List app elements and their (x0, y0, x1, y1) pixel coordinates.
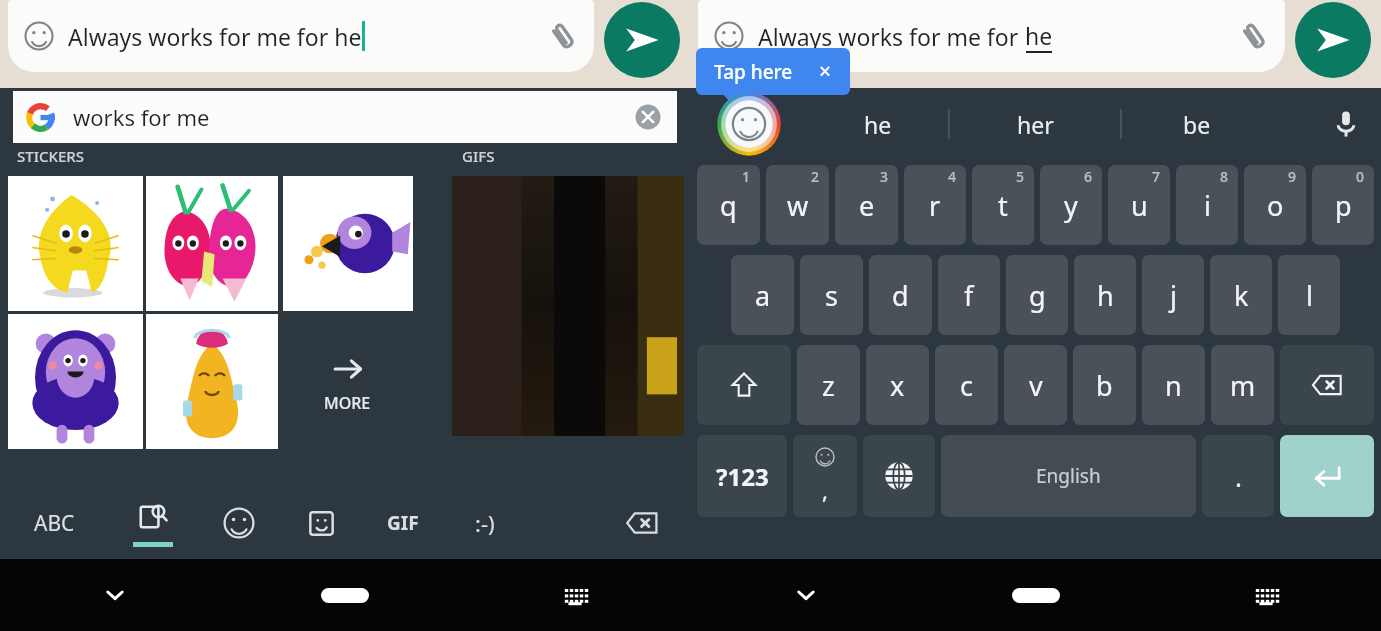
button[interactable]: h (1074, 255, 1136, 335)
button[interactable]: a (731, 255, 794, 335)
staticText: :-) (475, 508, 495, 538)
button[interactable]: d (869, 255, 932, 335)
staticText: 7 (1152, 167, 1161, 186)
staticText: x (890, 367, 905, 404)
staticText: p (1335, 187, 1352, 224)
staticText: h (1097, 277, 1114, 314)
staticText: STICKERS (17, 146, 85, 166)
other: Emoji (24, 21, 54, 51)
staticText: v (1029, 367, 1043, 404)
button[interactable]: . (1202, 435, 1274, 517)
other: Clear (635, 104, 661, 130)
button[interactable]: e (835, 165, 898, 245)
staticText: GIFS (462, 146, 495, 166)
button[interactable]: Send (604, 2, 680, 78)
staticText: a (755, 277, 771, 314)
button[interactable]: Send (1295, 2, 1371, 78)
button[interactable]: k (1210, 255, 1272, 335)
button[interactable]: Tap here (714, 57, 832, 86)
button[interactable]: her (950, 88, 1120, 160)
button[interactable]: Switch keyboard (460, 559, 690, 631)
staticText: be (1183, 109, 1211, 140)
button[interactable]: Voice input (1311, 88, 1381, 160)
button[interactable]: GIF (362, 487, 444, 559)
button[interactable]: Enter (1280, 435, 1374, 517)
button[interactable]: w (766, 165, 829, 245)
button[interactable]: c (935, 345, 998, 425)
button[interactable]: Emoji (8, 0, 594, 72)
staticText: e (859, 187, 875, 224)
button[interactable]: MORE (300, 352, 395, 414)
button[interactable]: Backspace (1280, 345, 1374, 425)
button[interactable]: Hide keyboard (690, 559, 921, 631)
staticText: 2 (811, 167, 820, 186)
staticText: 6 (1084, 167, 1093, 186)
button[interactable]: x (866, 345, 929, 425)
staticText: d (892, 277, 909, 314)
staticText: r (929, 187, 941, 224)
button[interactable]: Stickers (280, 487, 362, 559)
staticText: n (1165, 367, 1182, 404)
button[interactable]: Emoji suggestions (690, 88, 808, 160)
button[interactable]: be (1122, 88, 1272, 160)
staticText: , (822, 475, 828, 505)
button[interactable]: Home (921, 559, 1151, 631)
staticText: Always works for me for (758, 21, 1025, 52)
button[interactable]: Change language (863, 435, 935, 517)
button[interactable]: r (904, 165, 966, 245)
button[interactable]: , (793, 435, 857, 517)
button[interactable]: i (1176, 165, 1238, 245)
staticText: j (1170, 277, 1177, 314)
button[interactable]: m (1211, 345, 1274, 425)
button[interactable]: Shift (697, 345, 791, 425)
staticText: c (960, 367, 973, 404)
button[interactable]: y (1040, 165, 1102, 245)
staticText: × (819, 57, 832, 86)
button[interactable] (452, 176, 684, 436)
staticText: l (1306, 277, 1313, 314)
button[interactable]: z (797, 345, 860, 425)
button[interactable]: Emoji (198, 487, 280, 559)
button[interactable]: l (1278, 255, 1340, 335)
button[interactable]: Sticker search (108, 487, 198, 559)
button[interactable]: b (1073, 345, 1136, 425)
button[interactable]: Backspace (594, 487, 690, 559)
button[interactable]: works for me (13, 91, 677, 143)
button[interactable]: n (1142, 345, 1205, 425)
staticText: 9 (1288, 167, 1297, 186)
button[interactable]: f (938, 255, 1000, 335)
button[interactable]: o (1244, 165, 1306, 245)
button[interactable]: Switch keyboard (1151, 559, 1381, 631)
staticText: 1 (742, 167, 751, 186)
button[interactable]: u (1108, 165, 1170, 245)
button[interactable] (146, 314, 278, 449)
button[interactable]: q (697, 165, 760, 245)
button[interactable] (8, 314, 143, 449)
staticText: ABC (34, 509, 75, 538)
button[interactable] (146, 176, 278, 311)
button[interactable]: p (1312, 165, 1374, 245)
staticText: Tap here (714, 59, 793, 85)
staticText: . (1235, 459, 1242, 494)
staticText: q (720, 187, 737, 224)
other: Emoji (714, 21, 744, 51)
staticText: her (1017, 109, 1054, 140)
button[interactable]: ?123 (697, 435, 787, 517)
button[interactable] (283, 176, 413, 311)
button[interactable]: English (941, 435, 1196, 517)
button[interactable]: s (800, 255, 863, 335)
button[interactable]: Hide keyboard (0, 559, 230, 631)
button[interactable]: he (808, 88, 948, 160)
button[interactable]: Emoji (698, 0, 1285, 72)
button[interactable]: ABC (0, 487, 108, 559)
staticText: works for me (73, 102, 210, 132)
staticText: ?123 (716, 460, 769, 493)
button[interactable]: t (972, 165, 1034, 245)
button[interactable]: j (1142, 255, 1204, 335)
button[interactable]: v (1004, 345, 1067, 425)
button[interactable] (8, 176, 143, 311)
button[interactable]: Home (230, 559, 460, 631)
staticText: u (1131, 187, 1148, 224)
button[interactable]: g (1006, 255, 1068, 335)
button[interactable]: :-) (444, 487, 526, 559)
